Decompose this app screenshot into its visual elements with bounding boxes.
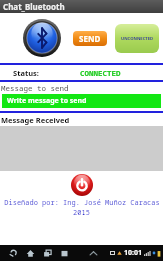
staticText: UNCONNECTED (121, 36, 154, 42)
staticText: Chat_Bluetooth (3, 1, 65, 12)
staticText: Write message to send (7, 96, 87, 106)
button[interactable]: Keyboard (88, 248, 99, 259)
staticText: Status: (13, 68, 39, 78)
button[interactable]: Home (25, 248, 36, 259)
button[interactable]: Menu (59, 248, 70, 259)
staticText: CONNECTED (80, 68, 121, 78)
staticText: 10:01 (124, 248, 142, 258)
staticText: Diseñado por: Ing. José Muñoz Caracas (4, 198, 160, 208)
staticText: Message to send (1, 83, 69, 93)
button[interactable]: Write message to send (2, 94, 161, 108)
button[interactable]: Power off (71, 174, 93, 196)
staticText: SEND (79, 33, 101, 44)
button[interactable]: UNCONNECTED (115, 24, 159, 53)
staticText: Message Received (1, 115, 70, 125)
button[interactable]: Recent apps (42, 248, 53, 259)
staticText: 2015 (73, 208, 90, 218)
button[interactable]: SEND (73, 31, 107, 46)
button[interactable]: Back (8, 248, 19, 259)
button[interactable]: Bluetooth on/off (23, 19, 61, 57)
